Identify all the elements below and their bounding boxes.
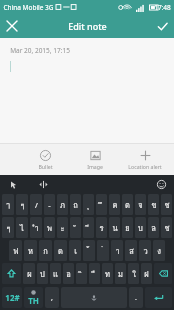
button[interactable]: ง	[153, 240, 165, 261]
staticText: ใ	[132, 268, 136, 280]
staticText: ๅ	[6, 199, 10, 211]
button[interactable]: TH	[24, 287, 43, 308]
staticText: บ	[138, 222, 143, 234]
staticText: ส	[129, 245, 134, 257]
button[interactable]: -	[44, 194, 55, 215]
button[interactable]: ฟ	[9, 240, 22, 261]
button[interactable]: ะ	[57, 217, 68, 238]
button[interactable]: ก	[39, 240, 52, 261]
button[interactable]: ข	[148, 194, 159, 215]
button[interactable]: ป	[37, 263, 48, 284]
button[interactable]: ื	[89, 263, 100, 284]
staticText: Mar 20, 2015, 17:15	[10, 46, 70, 55]
button[interactable]: แ	[50, 263, 61, 284]
button[interactable]: ั	[70, 217, 81, 238]
button[interactable]: ๆ	[2, 217, 14, 238]
staticText: ล	[151, 222, 156, 234]
button[interactable]: ม	[115, 263, 126, 284]
button[interactable]: Cursor	[6, 178, 19, 191]
button[interactable]: ค	[109, 194, 120, 215]
button[interactable]: ช	[161, 194, 172, 215]
staticText: น	[112, 222, 118, 234]
button[interactable]: ด	[54, 240, 67, 261]
button[interactable]: น	[109, 217, 120, 238]
staticText: ช	[164, 199, 170, 211]
button[interactable]: ล	[148, 217, 159, 238]
button[interactable]: ท	[102, 263, 113, 284]
button[interactable]: .	[129, 287, 143, 308]
button[interactable]: ี	[83, 217, 94, 238]
button[interactable]: ๆ	[16, 194, 28, 215]
staticText: TH	[28, 295, 39, 306]
button[interactable]: 12#	[2, 287, 22, 308]
button[interactable]: ,	[45, 287, 59, 308]
button[interactable]: ถ	[70, 194, 81, 215]
staticText: Bullet	[38, 163, 53, 170]
staticText: ท	[105, 268, 110, 280]
button[interactable]: ุ	[83, 194, 94, 215]
button[interactable]: Space	[61, 287, 127, 308]
staticText: 12#	[5, 292, 20, 303]
button[interactable]: Close	[0, 14, 24, 38]
button[interactable]: ช	[161, 217, 172, 238]
staticText: ง	[157, 245, 161, 257]
staticText: /	[35, 200, 38, 210]
staticText: า	[115, 245, 120, 257]
button[interactable]: Emoji	[155, 178, 168, 191]
button[interactable]: ่	[97, 240, 109, 261]
button[interactable]: ้	[83, 240, 95, 261]
button[interactable]: ว	[139, 240, 151, 261]
staticText: 17:48	[154, 3, 171, 12]
staticText: ,	[51, 293, 53, 303]
button[interactable]: ร	[96, 217, 107, 238]
button[interactable]: ึ	[96, 194, 107, 215]
button[interactable]: จ	[135, 194, 146, 215]
button[interactable]: Move cursor	[37, 178, 50, 191]
button[interactable]: ๅ	[2, 194, 14, 215]
staticText: ช	[164, 222, 170, 234]
button[interactable]: Enter	[145, 287, 172, 308]
button[interactable]: เ	[69, 240, 81, 261]
button[interactable]: ส	[125, 240, 137, 261]
button[interactable]: ำ	[30, 217, 42, 238]
staticText: Edit note	[68, 20, 107, 32]
staticText: ร	[99, 222, 104, 234]
staticText: ฝ	[144, 268, 149, 280]
staticText: Location alert	[128, 163, 162, 170]
staticText: ก	[43, 245, 48, 257]
staticText: ๆ	[20, 199, 25, 211]
button[interactable]: ไ	[16, 217, 28, 238]
button[interactable]: บ	[135, 217, 146, 238]
staticText: ต	[125, 199, 130, 211]
button[interactable]: ย	[122, 217, 133, 238]
button[interactable]: ใ	[128, 263, 139, 284]
staticText: พ	[47, 222, 52, 234]
staticText: เ	[74, 245, 77, 257]
staticText: ป	[40, 268, 45, 280]
staticText: ะ	[60, 222, 65, 234]
button[interactable]: ฝ	[141, 263, 152, 284]
button[interactable]: Bullet	[28, 150, 62, 170]
button[interactable]: พ	[44, 217, 55, 238]
staticText: ำ	[34, 222, 39, 234]
button[interactable]: ต	[122, 194, 133, 215]
staticText: อ	[66, 268, 71, 280]
button[interactable]: Save	[150, 14, 174, 38]
staticText: ๆ	[6, 222, 11, 234]
button[interactable]: ิ	[76, 263, 87, 284]
button[interactable]: Shift	[2, 263, 21, 284]
button[interactable]: Location alert	[128, 150, 162, 170]
button[interactable]: ภ	[57, 194, 68, 215]
button[interactable]: Backspace	[154, 263, 172, 284]
button[interactable]: ผ	[23, 263, 35, 284]
button[interactable]: อ	[63, 263, 74, 284]
button[interactable]: ห	[24, 240, 37, 261]
staticText: แ	[53, 268, 58, 280]
button[interactable]: /	[30, 194, 42, 215]
button[interactable]: า	[111, 240, 123, 261]
staticText: ถ	[73, 199, 78, 211]
button[interactable]: Image	[78, 150, 112, 170]
staticText: ค	[112, 199, 118, 211]
staticText: ผ	[27, 268, 32, 280]
staticText: ม	[118, 268, 123, 280]
